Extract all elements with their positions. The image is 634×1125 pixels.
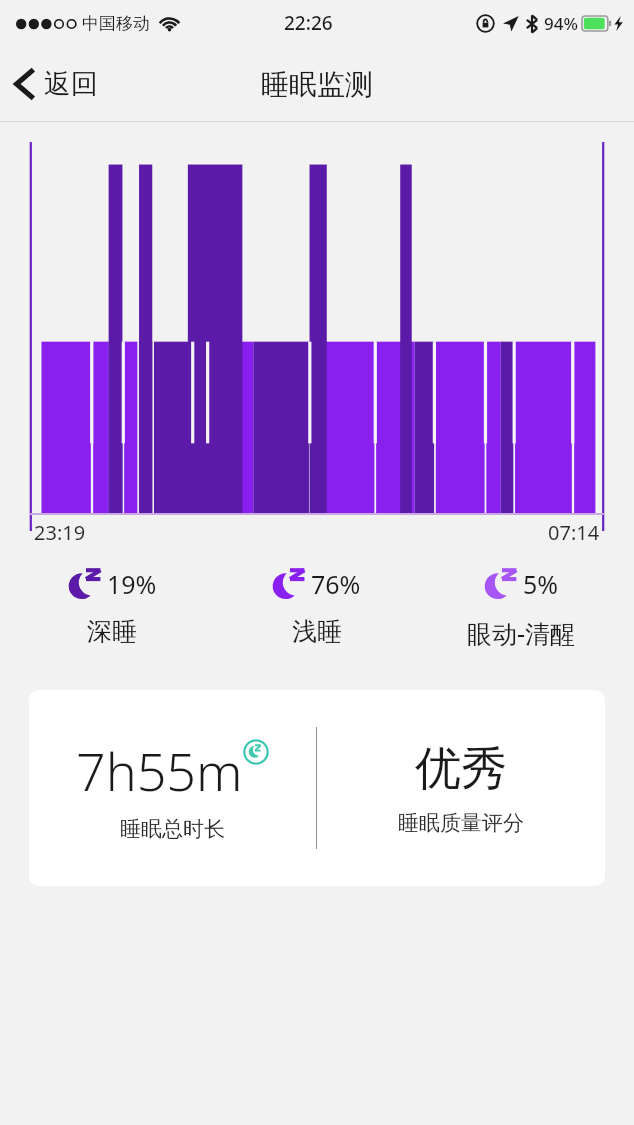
staticText: 深睡 <box>87 616 137 647</box>
staticText: 22:26 <box>284 10 333 36</box>
button[interactable]: 5% <box>419 566 624 650</box>
button[interactable]: 返回 <box>0 58 112 110</box>
staticText: 浅睡 <box>292 616 342 647</box>
staticText: 睡眠总时长 <box>120 816 225 842</box>
button[interactable]: 76% <box>214 566 419 647</box>
staticText: 94% <box>544 12 578 35</box>
staticText: 19% <box>107 567 157 601</box>
button[interactable]: 19% <box>10 566 214 647</box>
staticText: 5% <box>523 567 559 601</box>
staticText: 眼动-清醒 <box>467 616 576 650</box>
staticText: 返回 <box>44 67 98 101</box>
staticText: 23:19 <box>34 519 86 546</box>
staticText: 76% <box>311 567 361 601</box>
staticText: 睡眠质量评分 <box>398 810 524 836</box>
staticText: 中国移动 <box>82 13 150 34</box>
staticText: 07:14 <box>548 519 600 546</box>
staticText: 睡眠监测 <box>261 67 373 102</box>
staticText: 7h55m <box>76 735 243 806</box>
button[interactable]: 7h55m <box>29 690 605 886</box>
staticText: 优秀 <box>415 740 507 798</box>
